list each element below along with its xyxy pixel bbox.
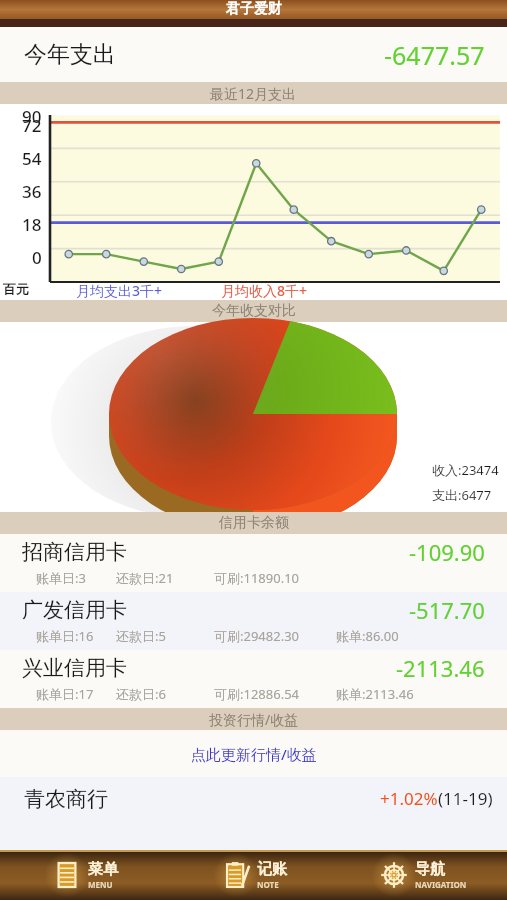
staticText: 还款日:21 xyxy=(116,569,214,587)
staticText: 导航 xyxy=(415,860,445,879)
staticText: 账单:2113.46 xyxy=(336,685,414,703)
button[interactable]: 点此更新行情/收益 xyxy=(0,730,507,777)
staticText: 账单日:16 xyxy=(36,627,116,645)
staticText: +1.02% xyxy=(380,787,438,810)
staticText: NOTE xyxy=(257,879,279,890)
staticText: 0 xyxy=(32,246,42,269)
staticText: 百元 xyxy=(3,281,29,297)
staticText: 今年支出 xyxy=(24,40,116,69)
staticText: -109.90 xyxy=(409,537,485,567)
staticText: 还款日:5 xyxy=(116,627,214,645)
staticText: 可刷:11890.10 xyxy=(214,569,336,587)
staticText: (11-19) xyxy=(438,787,493,810)
staticText: 账单日:17 xyxy=(36,685,116,703)
button[interactable]: 青农商行 xyxy=(0,777,507,820)
staticText: 账单日:3 xyxy=(36,569,116,587)
button[interactable]: 今年支出 xyxy=(0,27,507,82)
staticText: NAVIGATION xyxy=(415,879,467,890)
staticText: 54 xyxy=(22,147,42,170)
staticText: -2113.46 xyxy=(396,653,485,683)
staticText: 支出:6477 xyxy=(432,486,492,504)
staticText: 点此更新行情/收益 xyxy=(191,744,317,764)
staticText: 月均支出3千+ xyxy=(76,281,163,300)
staticText: 信用卡余额 xyxy=(219,514,289,532)
staticText: 兴业信用卡 xyxy=(22,655,127,681)
button[interactable]: Note xyxy=(169,850,338,900)
staticText: 投资行情/收益 xyxy=(209,710,299,729)
staticText: 招商信用卡 xyxy=(22,539,127,565)
staticText: -517.70 xyxy=(409,595,485,625)
staticText: 君子爱财 xyxy=(226,0,282,18)
staticText: 月均收入8千+ xyxy=(221,281,308,300)
button[interactable]: 广发信用卡 xyxy=(0,592,507,650)
staticText: 广发信用卡 xyxy=(22,597,127,623)
button[interactable]: Navigation xyxy=(338,850,507,900)
button[interactable]: 招商信用卡 xyxy=(0,534,507,592)
staticText: -6477.57 xyxy=(384,38,485,72)
staticText: 36 xyxy=(22,180,42,203)
staticText: 账单:86.00 xyxy=(336,627,399,645)
staticText: 菜单 xyxy=(88,860,118,879)
staticText: 收入:23474 xyxy=(432,461,499,479)
button[interactable]: Menu xyxy=(0,850,169,900)
button[interactable]: 兴业信用卡 xyxy=(0,650,507,708)
staticText: 青农商行 xyxy=(24,786,108,812)
staticText: 最近12月支出 xyxy=(210,84,297,103)
staticText: 今年收支对比 xyxy=(212,302,296,320)
staticText: 还款日:6 xyxy=(116,685,214,703)
staticText: 90 xyxy=(22,105,42,125)
staticText: 可刷:12886.54 xyxy=(214,685,336,703)
staticText: 可刷:29482.30 xyxy=(214,627,336,645)
staticText: MENU xyxy=(88,879,113,890)
staticText: 记账 xyxy=(257,860,287,879)
staticText: 18 xyxy=(22,213,42,236)
staticText: 72 xyxy=(22,114,42,137)
